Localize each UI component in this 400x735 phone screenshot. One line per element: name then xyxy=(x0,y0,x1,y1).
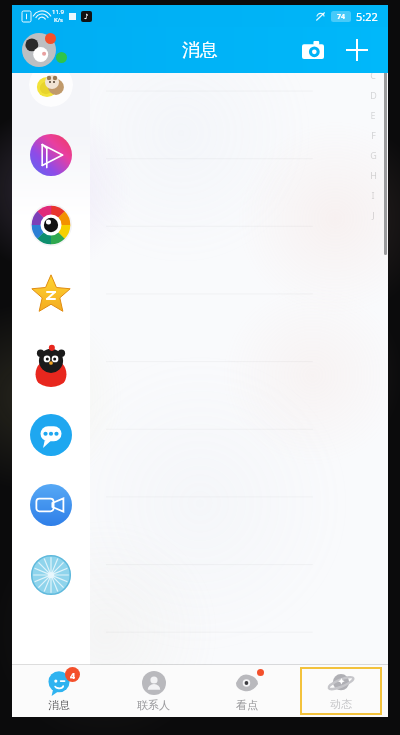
staticText: I xyxy=(371,189,375,201)
button[interactable]: Chat xyxy=(29,413,73,457)
button[interactable]: Add xyxy=(340,33,374,67)
staticText: 消息 xyxy=(48,698,70,712)
button[interactable]: Camera xyxy=(296,33,330,67)
staticText: ↑ xyxy=(369,11,377,21)
button[interactable]: Video call xyxy=(29,483,73,527)
button[interactable]: Profile xyxy=(22,33,56,67)
staticText: 看点 xyxy=(236,698,258,712)
button[interactable]: 看点 xyxy=(200,665,294,717)
staticText: 74 xyxy=(337,12,346,22)
button[interactable]: Eye app xyxy=(29,203,73,247)
staticText: F xyxy=(371,129,376,141)
staticText: H xyxy=(370,169,377,181)
staticText: 消息 xyxy=(182,39,218,62)
staticText: 5:22 xyxy=(356,9,378,24)
staticText: D xyxy=(370,89,377,101)
button[interactable]: Cat app xyxy=(29,63,73,107)
button[interactable]: Clock xyxy=(29,553,73,597)
button[interactable]: 联系人 xyxy=(106,665,200,717)
staticText: 4 xyxy=(70,669,76,681)
button[interactable]: Video app xyxy=(29,133,73,177)
button[interactable]: Star app xyxy=(29,273,73,317)
staticText: C xyxy=(370,69,376,81)
staticText: ♪ xyxy=(84,13,89,21)
button[interactable]: 4 xyxy=(12,665,106,717)
button[interactable] xyxy=(26,14,90,41)
staticText: 11.9 xyxy=(52,8,64,16)
staticText: 联系人 xyxy=(137,698,170,712)
staticText: K/s xyxy=(54,16,63,24)
staticText: 动态 xyxy=(330,697,352,711)
staticText: E xyxy=(370,109,376,121)
staticText: G xyxy=(370,149,377,161)
button[interactable]: QQ xyxy=(29,343,73,387)
button[interactable]: 动态 xyxy=(300,667,382,715)
staticText: J xyxy=(372,209,375,221)
